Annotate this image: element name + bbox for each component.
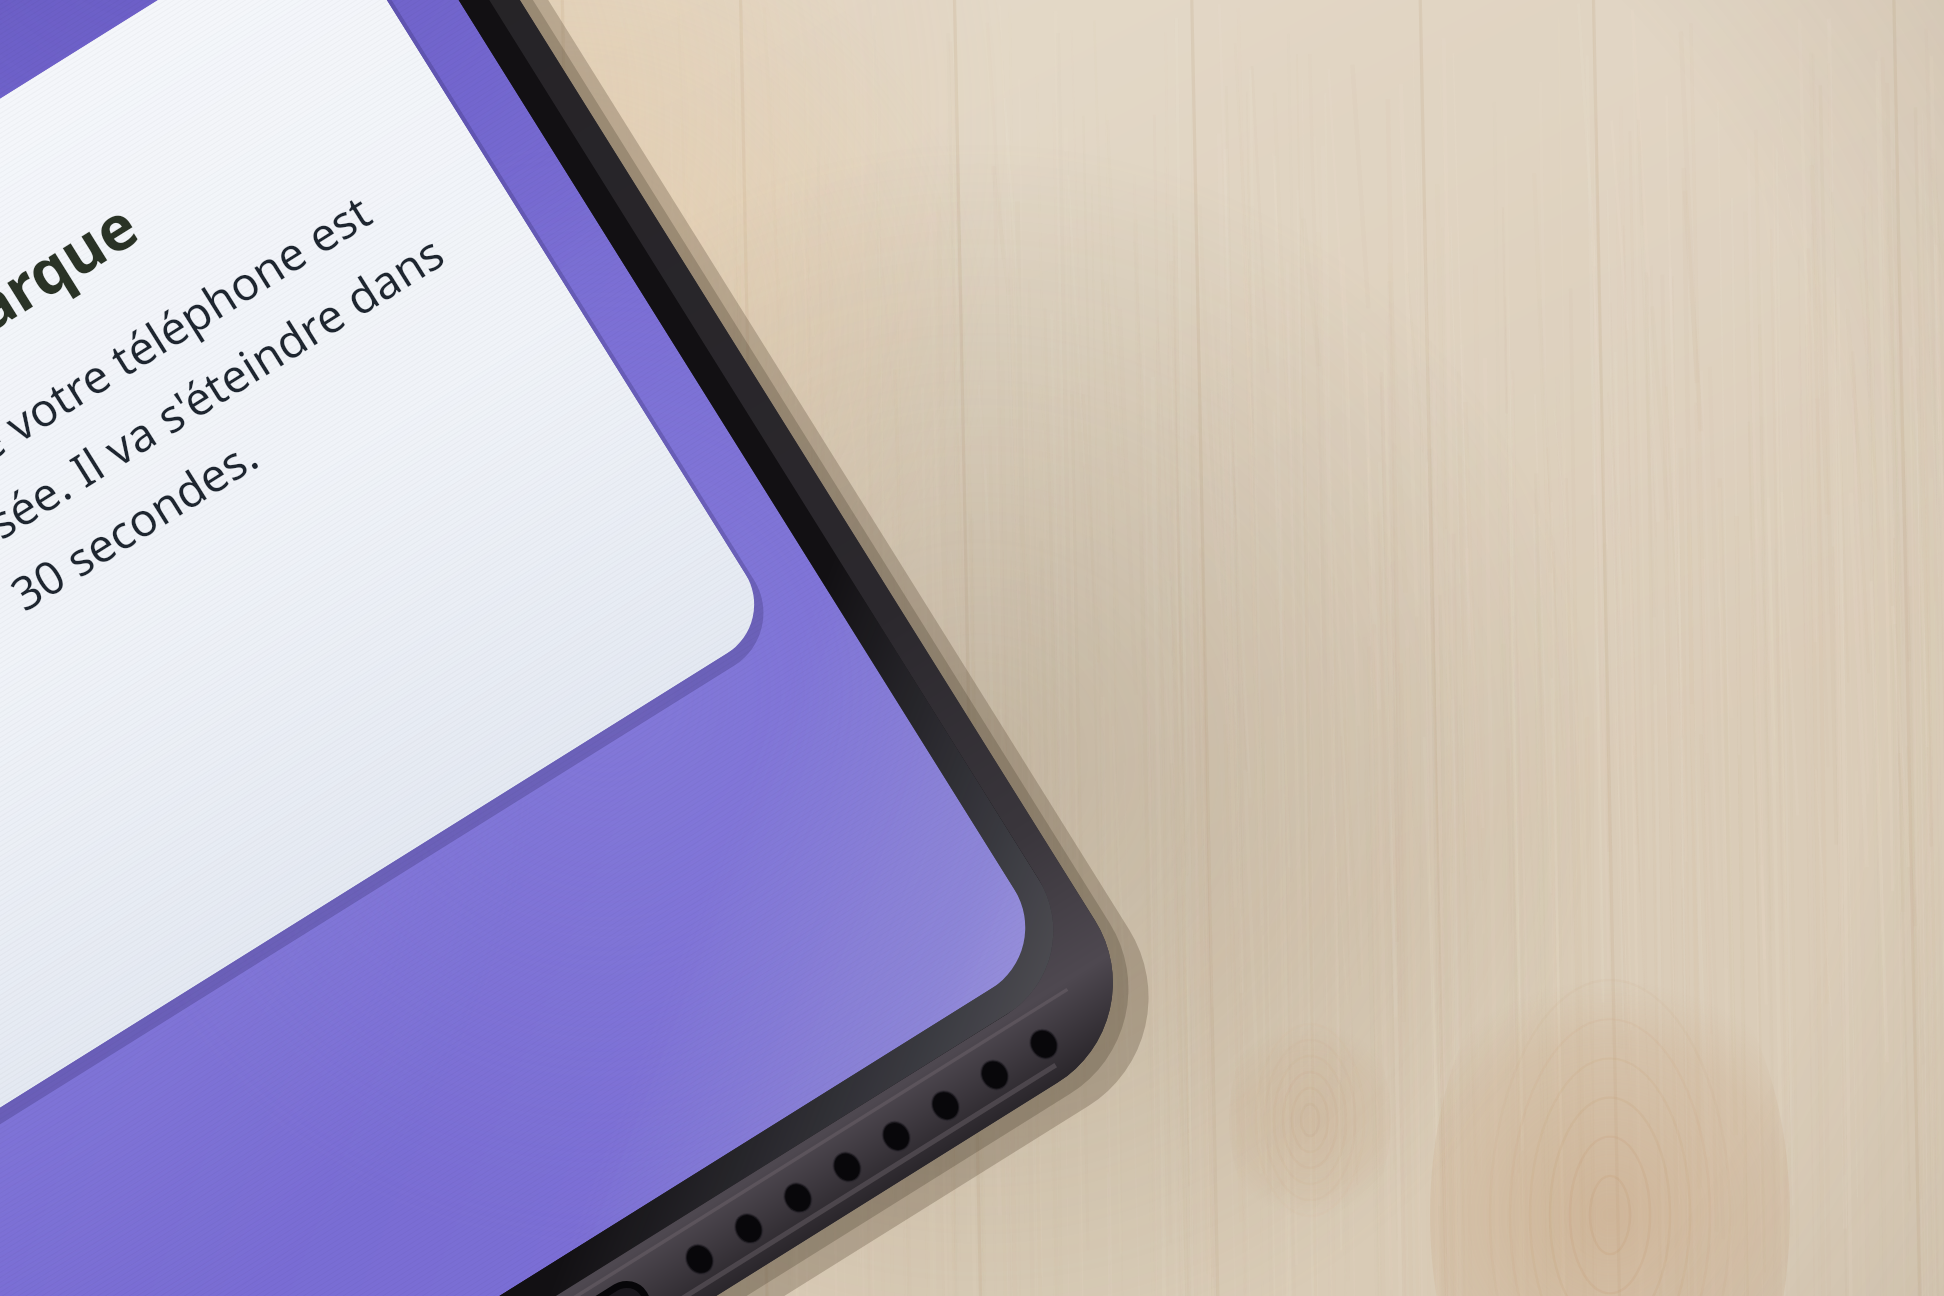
other: Phone on wooden table showing battery wa… bbox=[0, 0, 1944, 1296]
button[interactable]: Remarque battery warning dialog bbox=[0, 0, 1944, 1296]
